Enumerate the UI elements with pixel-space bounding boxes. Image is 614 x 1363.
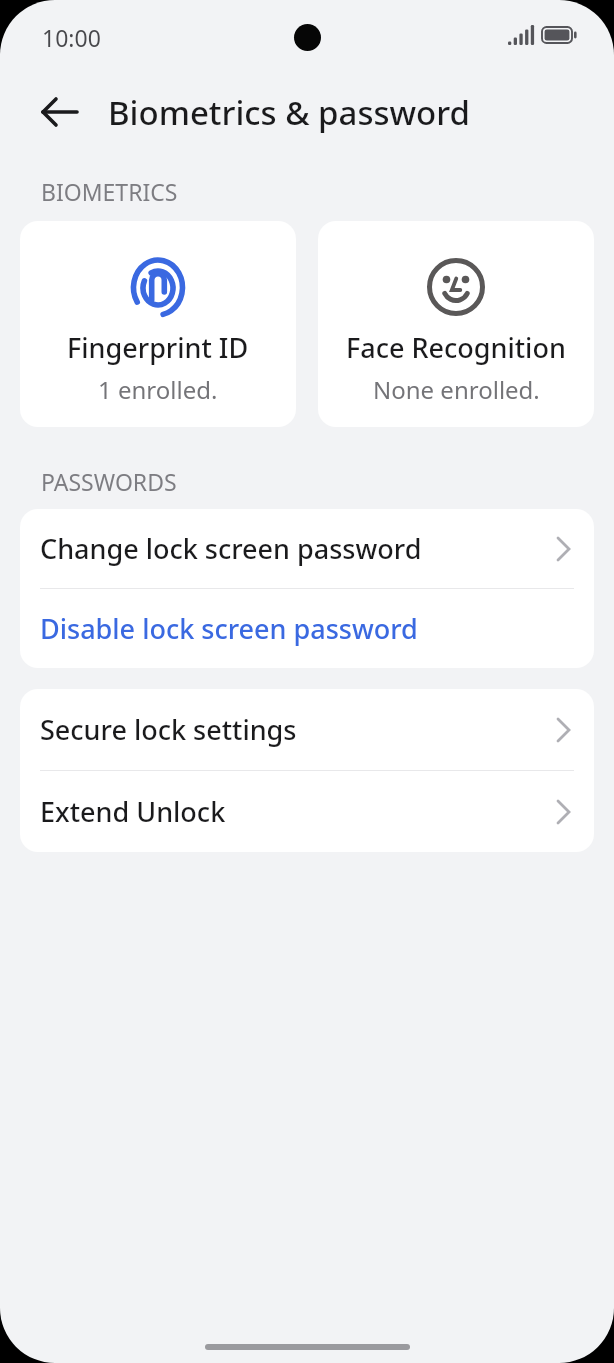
- staticText: PASSWORDS: [41, 466, 177, 497]
- staticText: Biometrics & password: [108, 90, 471, 135]
- staticText: Disable lock screen password: [40, 610, 572, 647]
- staticText: Face Recognition: [346, 329, 566, 366]
- staticText: None enrolled.: [373, 373, 540, 406]
- button[interactable]: Extend Unlock: [20, 771, 594, 852]
- button[interactable]: [40, 92, 80, 132]
- staticText: Change lock screen password: [40, 530, 556, 567]
- staticText: 10:00: [42, 22, 101, 53]
- staticText: Extend Unlock: [40, 793, 556, 830]
- button[interactable]: Disable lock screen password: [20, 589, 594, 668]
- staticText: 1 enrolled.: [98, 373, 218, 406]
- staticText: BIOMETRICS: [41, 176, 178, 207]
- button[interactable]: Change lock screen password: [20, 509, 594, 588]
- button[interactable]: Face Recognition: [318, 221, 594, 427]
- button[interactable]: Secure lock settings: [20, 689, 594, 770]
- staticText: Fingerprint ID: [67, 329, 249, 366]
- staticText: Secure lock settings: [40, 711, 556, 748]
- button[interactable]: Fingerprint ID: [20, 221, 296, 427]
